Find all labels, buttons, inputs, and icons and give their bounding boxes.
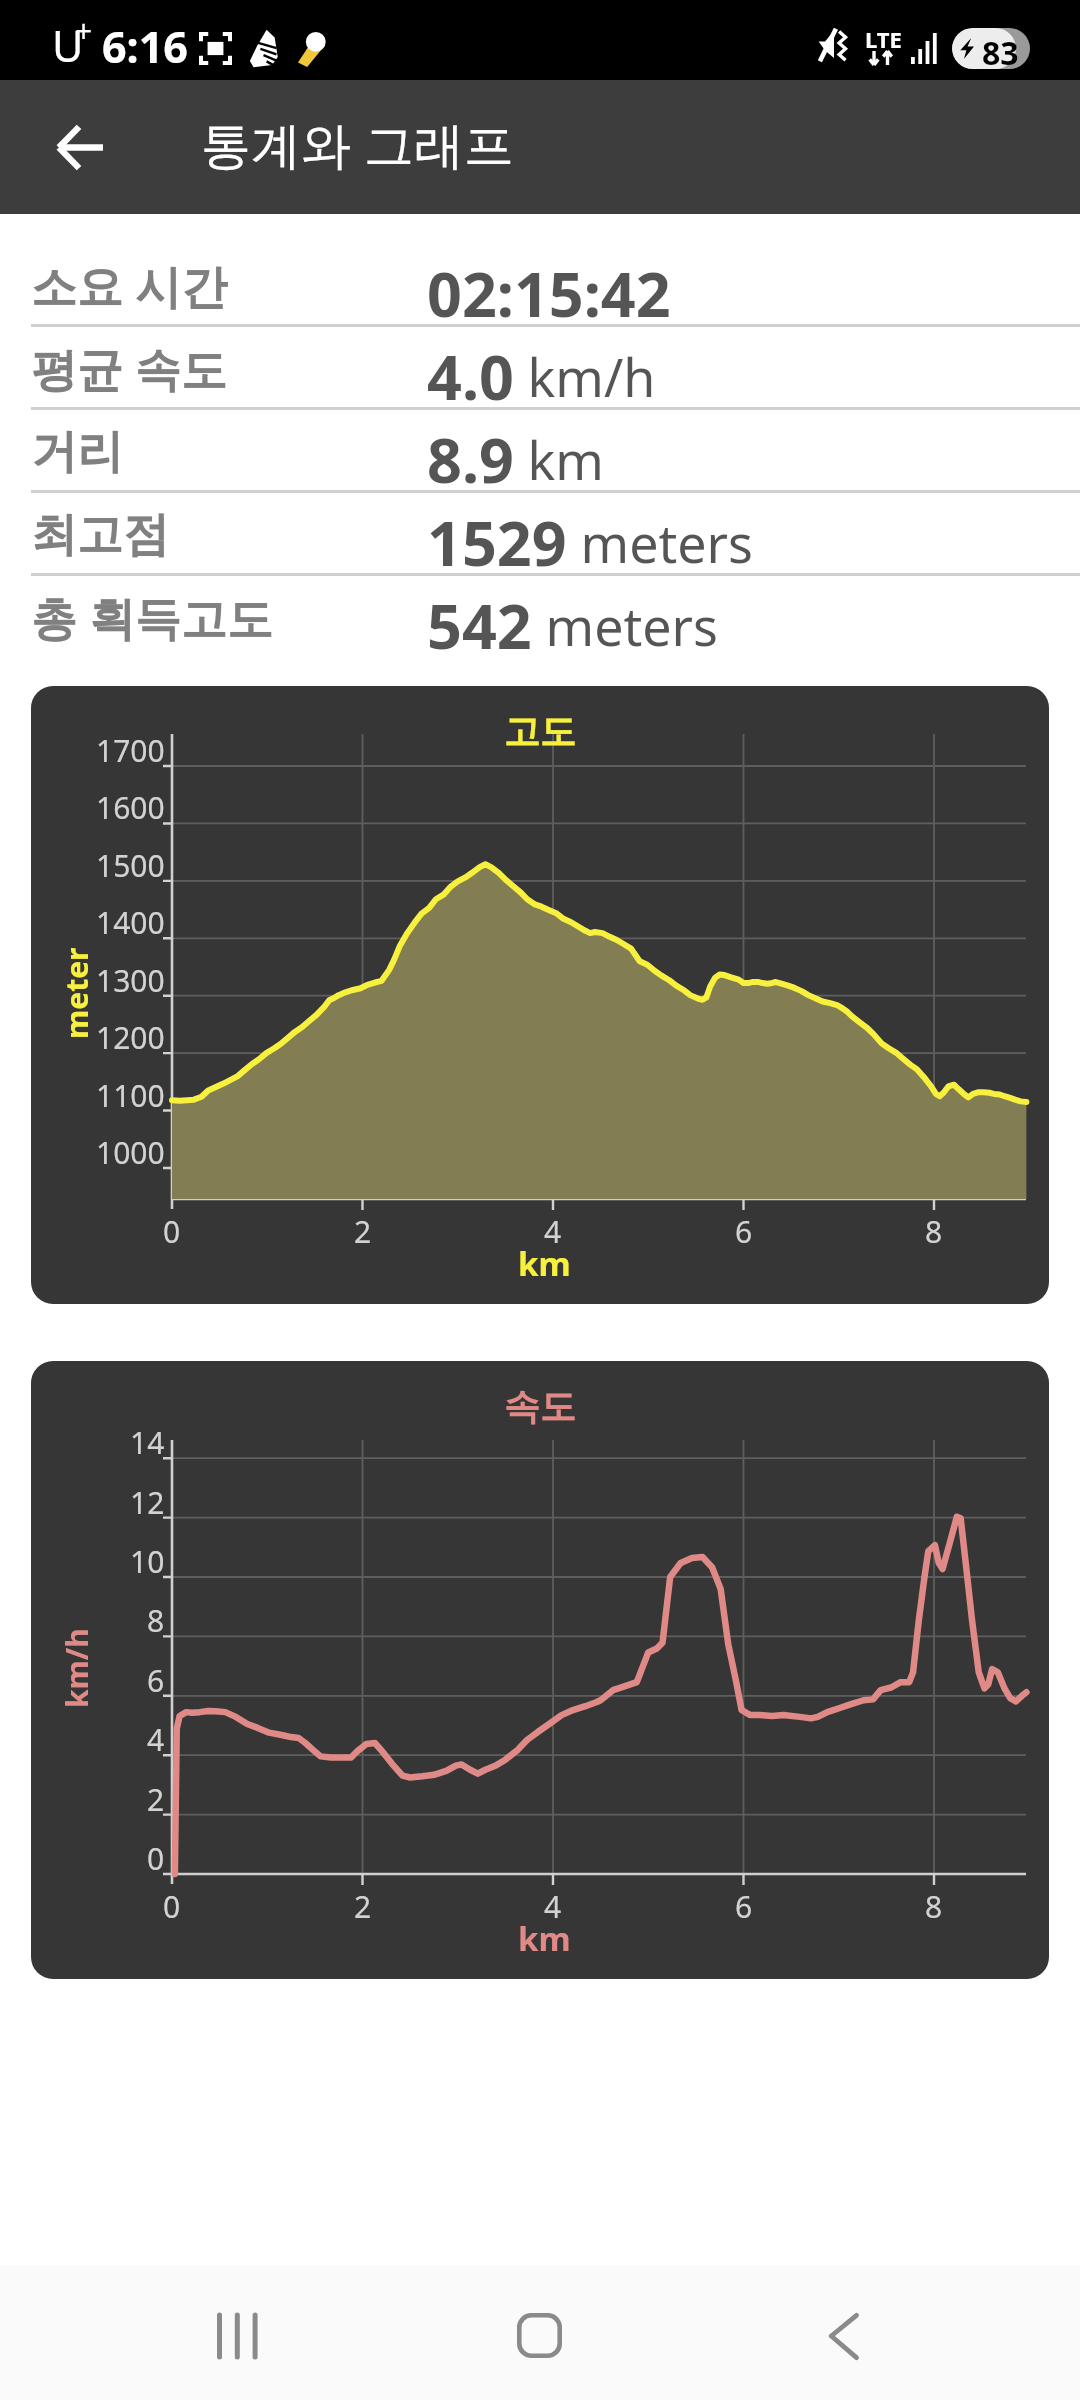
staticText: 8 — [925, 1886, 943, 1927]
staticText: 1100 — [96, 1075, 165, 1116]
staticText: 1000 — [96, 1132, 165, 1173]
staticText: 거리 — [31, 423, 123, 481]
staticText: 4 — [147, 1719, 165, 1760]
staticText: km — [518, 1916, 571, 1961]
button[interactable]: Back — [21, 80, 138, 214]
staticText: km — [518, 1241, 571, 1286]
staticText: 1500 — [96, 845, 165, 886]
staticText: 통계와 그래프 — [201, 110, 514, 178]
staticText: U — [52, 16, 84, 75]
staticText: 1529 — [427, 501, 567, 584]
staticText: LTE — [865, 24, 902, 54]
staticText: 0 — [163, 1211, 181, 1252]
staticText: 6 — [147, 1660, 165, 1701]
staticText: 1300 — [96, 960, 165, 1001]
staticText: 2 — [354, 1211, 372, 1252]
staticText: 6 — [735, 1211, 753, 1252]
staticText: 0 — [163, 1886, 181, 1927]
staticText: meters — [532, 590, 718, 661]
staticText: km/h — [514, 341, 656, 412]
staticText: 8 — [925, 1211, 943, 1252]
staticText: 6:16 — [102, 17, 188, 76]
staticText: 속도 — [504, 1384, 576, 1429]
staticText: 8 — [147, 1600, 165, 1641]
staticText: 평균 속도 — [31, 337, 227, 400]
staticText: 8.9 — [427, 418, 514, 501]
staticText: 0 — [147, 1838, 165, 1879]
button[interactable]: Back — [720, 2265, 960, 2400]
staticText: 2 — [147, 1779, 165, 1820]
staticText: 소요 시간 — [31, 254, 227, 317]
staticText: km — [514, 424, 604, 495]
staticText: 1600 — [96, 787, 165, 828]
staticText: km/h — [56, 1628, 97, 1708]
staticText: 02:15:42 — [427, 252, 671, 335]
staticText: 1400 — [96, 902, 165, 943]
staticText: 고도 — [504, 709, 576, 754]
staticText: 최고점 — [31, 506, 169, 564]
staticText: 6 — [735, 1886, 753, 1927]
staticText: + — [75, 10, 93, 51]
staticText: 1200 — [96, 1017, 165, 1058]
button[interactable]: Home — [420, 2265, 660, 2400]
staticText: 83 — [982, 31, 1019, 69]
staticText: 4 — [544, 1886, 562, 1927]
staticText: 14 — [130, 1422, 165, 1463]
staticText: meter — [56, 947, 97, 1039]
staticText: 10 — [130, 1541, 165, 1582]
button[interactable]: Recents — [120, 2265, 360, 2400]
staticText: 4 — [544, 1211, 562, 1252]
staticText: 4.0 — [427, 335, 514, 418]
staticText: 12 — [130, 1482, 165, 1523]
staticText: 총 획득고도 — [31, 586, 273, 649]
staticText: 1700 — [96, 730, 165, 771]
staticText: meters — [567, 507, 753, 578]
staticText: 542 — [427, 584, 532, 667]
staticText: 2 — [354, 1886, 372, 1927]
